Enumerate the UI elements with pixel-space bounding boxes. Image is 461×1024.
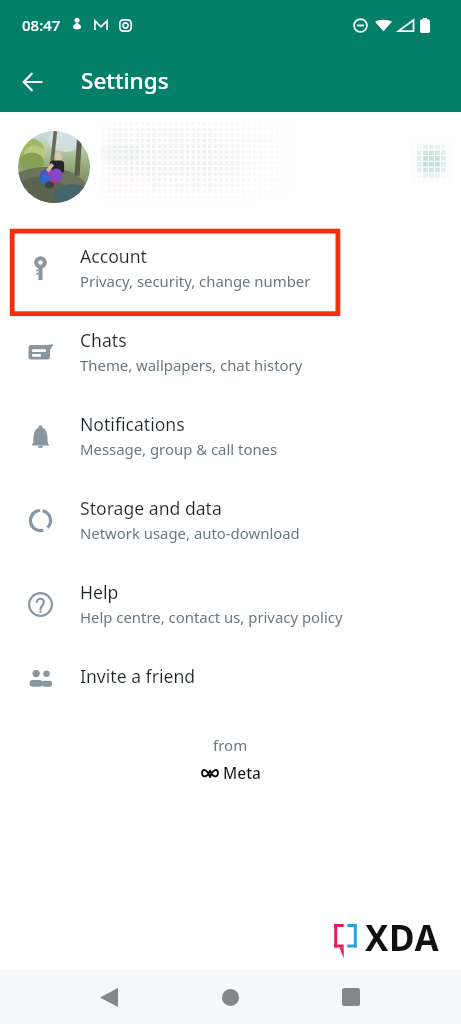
staticText: from (213, 735, 248, 755)
staticText: Notifications (80, 412, 185, 436)
staticText: Storage and data (80, 496, 222, 520)
staticText: Theme, wallpapers, chat history (80, 355, 303, 375)
staticText: XDA (365, 914, 440, 962)
button[interactable]: Back (8, 58, 56, 106)
staticText: Meta (223, 762, 261, 783)
staticText: Invite a friend (80, 664, 196, 688)
staticText: Network usage, auto-download (80, 523, 300, 543)
button[interactable]: Back (86, 970, 132, 1024)
button[interactable]: Chats (0, 316, 461, 400)
staticText: Account (80, 244, 147, 268)
button[interactable]: Recent apps (328, 970, 374, 1024)
staticText: Privacy, security, change number (80, 271, 311, 291)
button[interactable]: Account (0, 232, 461, 316)
button[interactable]: Help (0, 568, 461, 652)
button[interactable]: Home (207, 970, 253, 1024)
staticText: Settings (81, 65, 169, 96)
button[interactable]: Storage and data (0, 484, 461, 568)
button[interactable]: QR code (404, 132, 460, 192)
button[interactable]: Invite a friend (0, 652, 461, 736)
staticText: Message, group & call tones (80, 439, 278, 459)
staticText: 08:47 (22, 15, 61, 35)
staticText: Help centre, contact us, privacy policy (80, 607, 343, 627)
button[interactable]: Profile (0, 112, 461, 218)
button[interactable]: Notifications (0, 400, 461, 484)
staticText: Chats (80, 328, 127, 352)
staticText: Help (80, 580, 119, 604)
